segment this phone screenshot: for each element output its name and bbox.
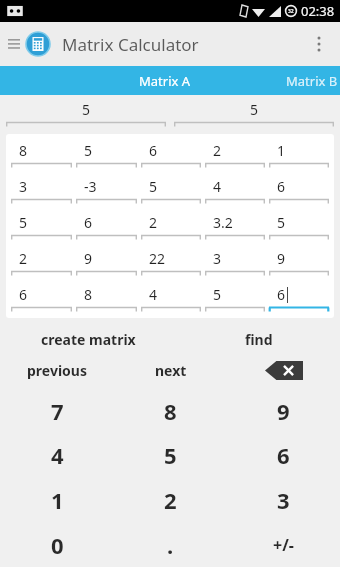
staticText: 4: [149, 285, 158, 304]
button[interactable]: 5: [141, 174, 201, 206]
button[interactable]: -3: [76, 174, 137, 206]
staticText: 5: [149, 177, 158, 196]
staticText: .: [167, 530, 174, 560]
staticText: 6: [277, 285, 286, 304]
staticText: 4: [51, 440, 64, 470]
staticText: 8: [84, 285, 93, 304]
button[interactable]: 8: [114, 389, 227, 433]
button[interactable]: 3.2: [205, 210, 265, 242]
button[interactable]: +/-: [227, 522, 340, 567]
button[interactable]: Backspace: [227, 357, 340, 383]
staticText: 4: [213, 177, 222, 196]
staticText: 1: [277, 141, 286, 160]
staticText: 3: [277, 485, 290, 515]
staticText: 5: [19, 213, 28, 232]
staticText: 5: [250, 100, 259, 119]
button[interactable]: 2: [205, 138, 265, 170]
staticText: 6: [277, 177, 286, 196]
button[interactable]: 6: [227, 433, 340, 477]
staticText: 2: [164, 485, 177, 515]
button[interactable]: 22: [141, 246, 201, 278]
button[interactable]: next: [114, 357, 227, 383]
staticText: 8: [19, 141, 28, 160]
staticText: 7: [51, 396, 64, 426]
staticText: 9: [84, 249, 93, 268]
button[interactable]: Matrix B: [276, 68, 340, 94]
button[interactable]: Open navigation drawer: [6, 22, 22, 66]
button[interactable]: 2: [11, 246, 72, 278]
button[interactable]: 3: [227, 477, 340, 522]
button[interactable]: 6: [141, 138, 201, 170]
staticText: 6: [277, 440, 290, 470]
button[interactable]: More options: [304, 22, 334, 66]
button[interactable]: 6: [269, 174, 329, 206]
staticText: 9: [277, 249, 286, 268]
button[interactable]: .: [114, 522, 227, 567]
staticText: 6: [84, 213, 93, 232]
button[interactable]: 0: [0, 522, 114, 567]
staticText: 5: [84, 141, 93, 160]
button[interactable]: create matrix: [0, 327, 177, 351]
staticText: 32: [288, 8, 294, 15]
button[interactable]: 5: [114, 433, 227, 477]
staticText: 9: [277, 396, 290, 426]
button[interactable]: 4: [205, 174, 265, 206]
staticText: 5: [82, 100, 91, 119]
staticText: 2: [213, 141, 222, 160]
staticText: -3: [84, 177, 97, 196]
staticText: next: [155, 361, 187, 380]
button[interactable]: 5: [6, 97, 166, 129]
button[interactable]: 9: [76, 246, 137, 278]
staticText: 6: [19, 285, 28, 304]
staticText: 2: [149, 213, 158, 232]
button[interactable]: 8: [11, 138, 72, 170]
button[interactable]: 2: [141, 210, 201, 242]
button[interactable]: 8: [76, 282, 137, 314]
button[interactable]: 6: [269, 282, 329, 314]
staticText: 6: [149, 141, 158, 160]
staticText: 3: [213, 249, 222, 268]
button[interactable]: 7: [0, 389, 114, 433]
staticText: 3.2: [213, 213, 233, 232]
button[interactable]: 6: [76, 210, 137, 242]
button[interactable]: 2: [114, 477, 227, 522]
button[interactable]: 5: [269, 210, 329, 242]
button[interactable]: Matrix A: [129, 68, 201, 94]
staticText: create matrix: [41, 330, 136, 349]
button[interactable]: 1: [269, 138, 329, 170]
staticText: 5: [277, 213, 286, 232]
staticText: 5: [164, 440, 177, 470]
button[interactable]: 5: [76, 138, 137, 170]
staticText: 2: [19, 249, 28, 268]
button[interactable]: 9: [269, 246, 329, 278]
staticText: 22: [149, 249, 166, 268]
staticText: +/-: [273, 534, 294, 556]
staticText: previous: [27, 361, 87, 380]
button[interactable]: 5: [174, 97, 334, 129]
button[interactable]: 1: [0, 477, 114, 522]
staticText: 8: [164, 396, 177, 426]
staticText: Matrix Calculator: [62, 33, 199, 56]
button[interactable]: 9: [227, 389, 340, 433]
button[interactable]: 5: [205, 282, 265, 314]
button[interactable]: 5: [11, 210, 72, 242]
button[interactable]: 3: [11, 174, 72, 206]
staticText: 3: [19, 177, 28, 196]
other: Open navigation drawer: [8, 38, 20, 50]
staticText: find: [245, 330, 273, 349]
button[interactable]: 4: [141, 282, 201, 314]
staticText: 02:38: [301, 2, 335, 20]
button[interactable]: 6: [11, 282, 72, 314]
staticText: 5: [213, 285, 222, 304]
staticText: 0: [51, 530, 64, 560]
button[interactable]: 4: [0, 433, 114, 477]
staticText: 1: [51, 485, 64, 515]
button[interactable]: find: [177, 327, 340, 351]
button[interactable]: previous: [0, 357, 114, 383]
button[interactable]: 3: [205, 246, 265, 278]
